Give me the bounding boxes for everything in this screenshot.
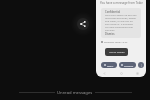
- staticText: Forward: [124, 64, 134, 67]
- staticText: Dismiss: [105, 32, 115, 36]
- button[interactable]: Reply: [101, 62, 117, 68]
- button[interactable]: More options: [138, 62, 144, 68]
- staticText: Reply: [107, 64, 114, 67]
- staticText: Unread messages: [57, 90, 93, 95]
- button[interactable]: Add to Google: [105, 48, 128, 56]
- staticText: Add to Google: [109, 51, 125, 54]
- button[interactable]: Forward: [119, 62, 136, 68]
- button[interactable]: Confidential: [101, 8, 141, 38]
- staticText: Confidential: [105, 10, 121, 14]
- staticText: Send your details up with the Informatie…: [105, 14, 137, 32]
- staticText: You have a message from Tobie: [100, 1, 143, 5]
- button[interactable]: Share: [77, 18, 89, 30]
- staticText: Received Tobie 10:42: [104, 40, 128, 43]
